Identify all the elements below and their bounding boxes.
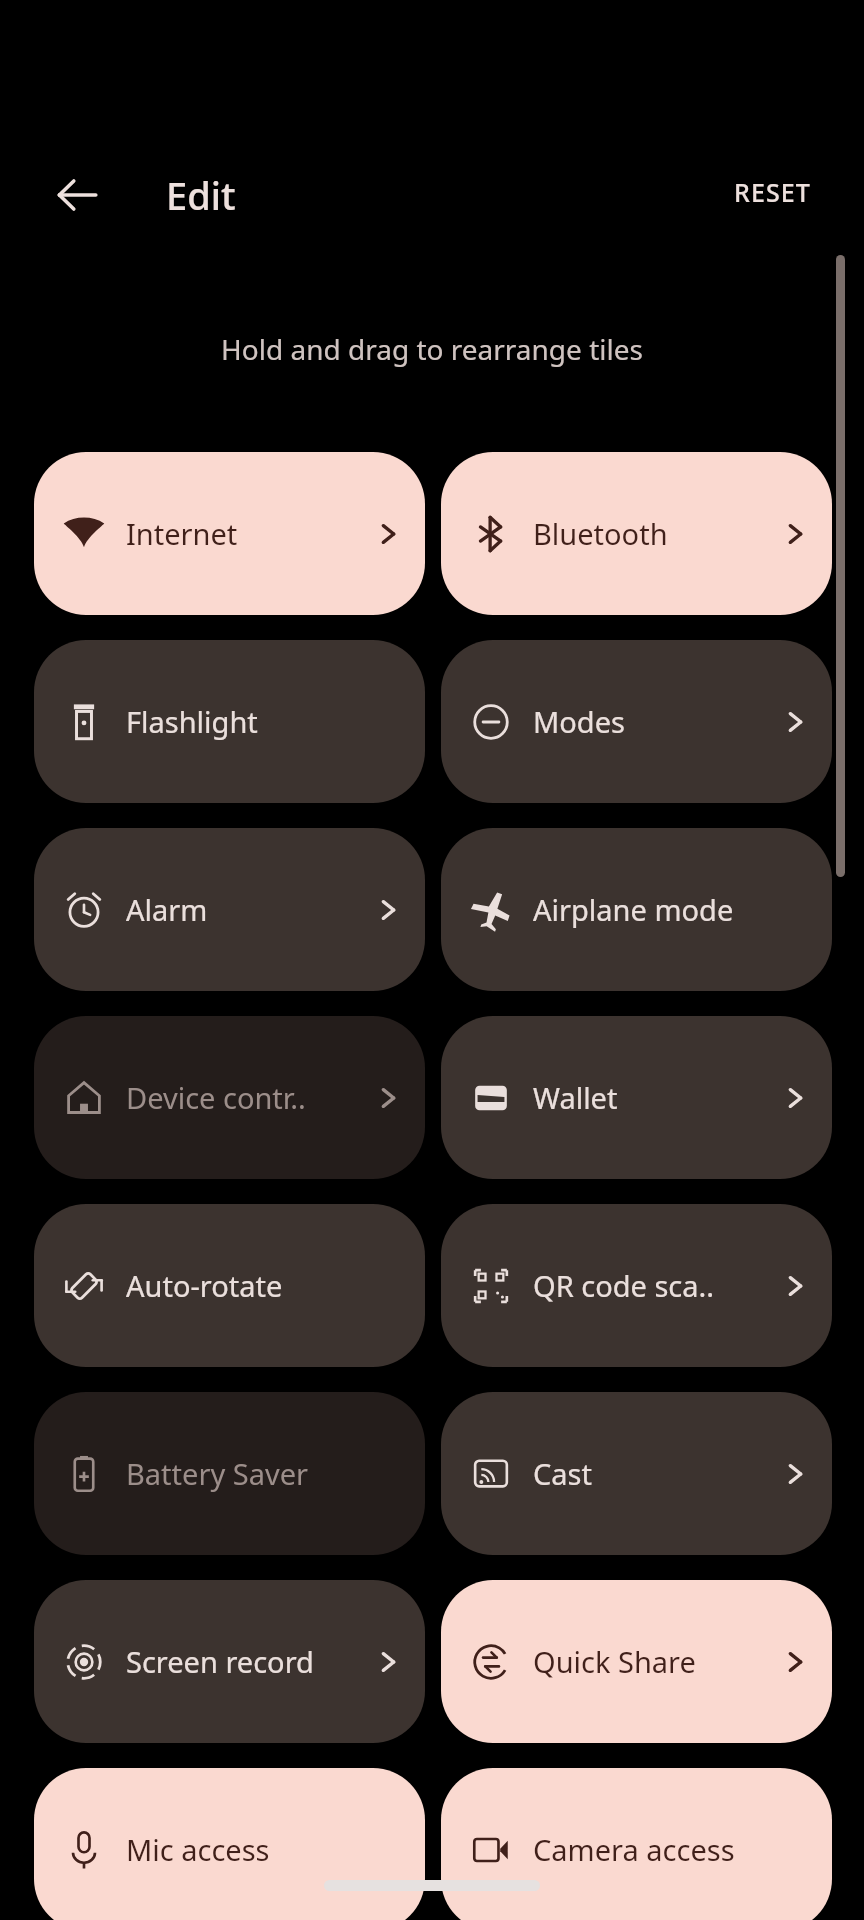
staticText: Airplane mode (533, 890, 734, 929)
staticText: Cast (533, 1454, 592, 1493)
staticText: Mic access (126, 1830, 270, 1869)
button[interactable]: RESET (718, 163, 827, 221)
staticText: Edit (166, 169, 236, 221)
button[interactable]: Camera access (441, 1768, 832, 1920)
staticText: Camera access (533, 1830, 735, 1869)
staticText: Bluetooth (533, 514, 668, 553)
button[interactable]: Cast (441, 1392, 832, 1555)
button[interactable]: Modes (441, 640, 832, 803)
staticText: Flashlight (126, 702, 258, 741)
button[interactable]: QR code sca.. (441, 1204, 832, 1367)
staticText: Internet (126, 514, 238, 553)
staticText: Auto-rotate (126, 1266, 283, 1305)
staticText: RESET (734, 175, 811, 209)
staticText: Wallet (533, 1078, 618, 1117)
staticText: Battery Saver (126, 1454, 308, 1493)
button[interactable]: Quick Share (441, 1580, 832, 1743)
staticText: Quick Share (533, 1642, 696, 1681)
button[interactable]: Screen record (34, 1580, 425, 1743)
button[interactable]: Device contr.. (34, 1016, 425, 1179)
staticText: Modes (533, 702, 625, 741)
button[interactable]: Battery Saver (34, 1392, 425, 1555)
button[interactable]: Flashlight (34, 640, 425, 803)
staticText: Alarm (126, 890, 208, 929)
button[interactable]: Back (43, 161, 111, 229)
staticText: Hold and drag to rearrange tiles (0, 330, 864, 368)
button[interactable]: Internet (34, 452, 425, 615)
staticText: Screen record (126, 1642, 314, 1681)
button[interactable]: Mic access (34, 1768, 425, 1920)
button[interactable]: Airplane mode (441, 828, 832, 991)
staticText: Device contr.. (126, 1078, 306, 1117)
staticText: QR code sca.. (533, 1266, 715, 1305)
button[interactable]: Bluetooth (441, 452, 832, 615)
button[interactable]: Auto-rotate (34, 1204, 425, 1367)
button[interactable]: Alarm (34, 828, 425, 991)
button[interactable]: Wallet (441, 1016, 832, 1179)
